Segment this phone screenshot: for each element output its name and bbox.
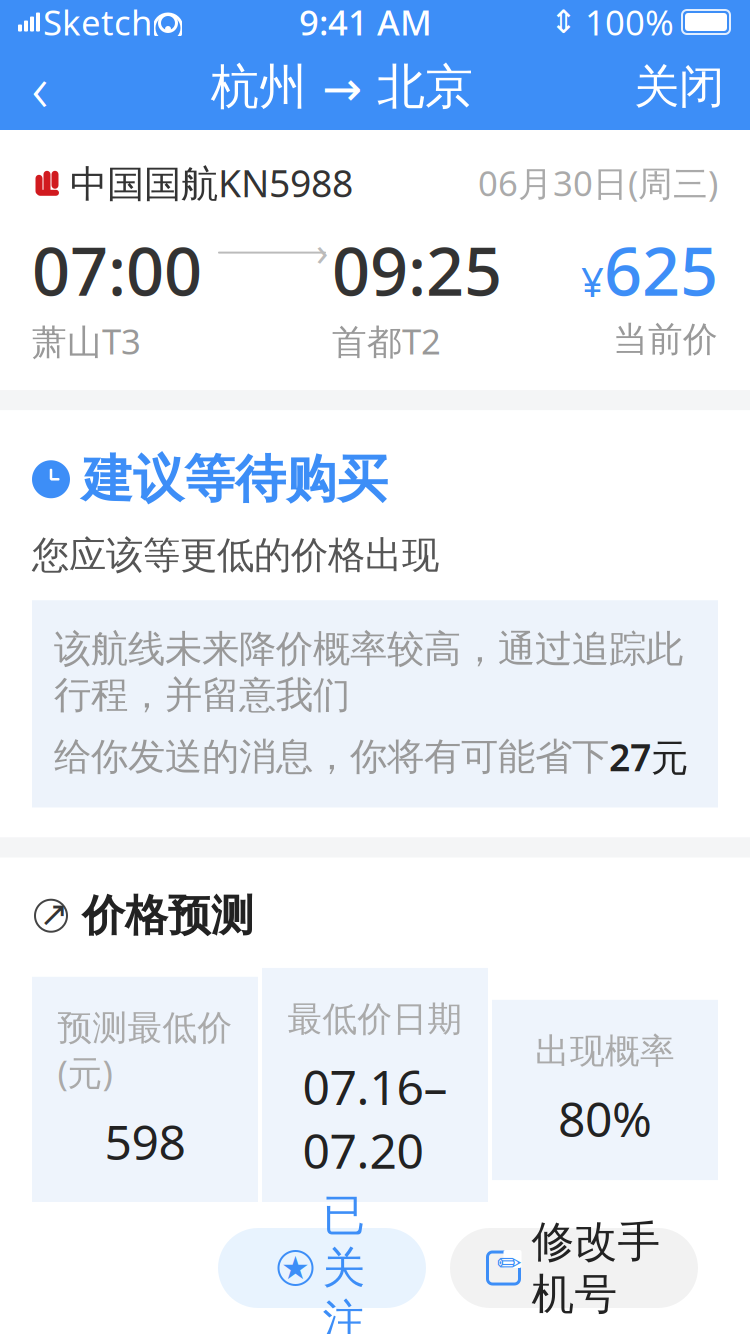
staticText: 关闭	[634, 59, 724, 115]
staticText: 100%	[585, 0, 674, 45]
staticText: 预测最低价(元)	[57, 1007, 232, 1095]
staticText: ★	[281, 1250, 310, 1286]
staticText: Sketch	[43, 0, 152, 45]
staticText: 杭州 → 北京	[211, 57, 473, 116]
staticText: 07.16–07.20	[302, 1054, 447, 1182]
staticText: 该航线未来降价概率较高，通过追踪此行程，并留意我们	[54, 626, 683, 718]
staticText: 建议等待购买	[82, 448, 388, 510]
staticText: ‹	[31, 44, 48, 129]
button[interactable]: Back	[0, 44, 80, 130]
staticText: 中国国航KN5988	[70, 158, 353, 208]
button[interactable]: ★	[218, 1228, 426, 1308]
staticText: ↗	[39, 894, 68, 933]
staticText: 625	[604, 226, 718, 314]
staticText: 您应该等更低的价格出现	[32, 532, 439, 578]
staticText: ›	[316, 224, 328, 277]
staticText: 09:25	[332, 226, 502, 314]
staticText: 首都T2	[332, 318, 441, 364]
staticText: 最低价日期	[287, 998, 462, 1040]
staticText: 在07.16–07.20期间出现最低价598（省下27元）	[32, 1240, 709, 1334]
staticText: 06月30日(周三)	[478, 160, 718, 206]
staticText: 萧山T3	[32, 318, 141, 364]
staticText: 9:41 AM	[299, 0, 432, 45]
staticText: 给你发送的消息，你将有可能省下	[54, 734, 609, 780]
staticText: ⇕	[550, 4, 577, 40]
staticText: 当前价	[613, 318, 718, 361]
staticText: 已关注	[322, 1189, 365, 1334]
staticText: 出现概率	[535, 1030, 675, 1072]
staticText: ✏	[497, 1246, 522, 1280]
staticText: 27元	[609, 732, 688, 781]
staticText: 80%	[558, 1086, 652, 1150]
staticText: 价格预测	[82, 889, 254, 942]
staticText: ¥	[581, 255, 604, 308]
button[interactable]: ✏	[450, 1228, 698, 1308]
staticText: 598	[104, 1109, 185, 1173]
staticText: 修改手机号	[531, 1216, 660, 1320]
staticText: 07:00	[32, 226, 202, 314]
button[interactable]: 关闭	[604, 44, 750, 130]
